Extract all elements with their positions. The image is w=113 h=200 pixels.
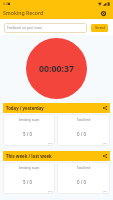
staticText: Smoking count (19, 118, 40, 122)
staticText: Feedback on your issue (7, 26, 43, 30)
staticText: Smoking count (19, 166, 40, 170)
staticText: (no.) (48, 189, 53, 192)
button[interactable]: Total time (57, 114, 110, 146)
staticText: 0 / 0 (77, 131, 86, 137)
button[interactable]: Smoking count (3, 162, 55, 194)
staticText: 0 / 0 (77, 179, 86, 185)
staticText: Total time (77, 118, 91, 122)
staticText: Send (95, 25, 105, 31)
button[interactable]: This week / last week (3, 151, 110, 161)
button[interactable]: 00:00:37 (26, 38, 87, 99)
button[interactable]: Feedback on your issue (4, 23, 87, 33)
staticText: 5 / 0 (23, 179, 32, 185)
staticText: (m.) (103, 189, 108, 192)
button[interactable]: Smoking count (3, 114, 55, 146)
staticText: Total time (77, 166, 91, 170)
button[interactable]: Share (101, 152, 109, 160)
button[interactable]: Settings (98, 8, 108, 18)
button[interactable]: Total time (57, 162, 110, 194)
staticText: This week / last week (6, 153, 52, 159)
staticText: (no.) (48, 141, 53, 144)
button[interactable]: Send (91, 24, 108, 32)
staticText: 6:47 (3, 1, 11, 6)
staticText: 5 / 0 (23, 131, 32, 137)
staticText: 00:00:37 (39, 63, 75, 75)
staticText: Today / yesterday (6, 105, 44, 111)
button[interactable]: Today / yesterday (3, 103, 110, 113)
button[interactable]: Share (101, 104, 109, 112)
staticText: Smoking Record (3, 9, 44, 16)
staticText: (m.) (103, 141, 108, 144)
